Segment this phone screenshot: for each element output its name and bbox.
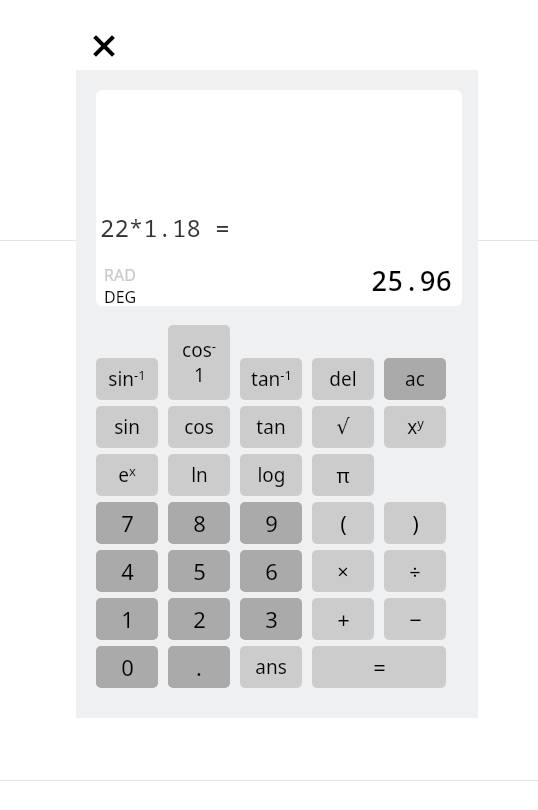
button[interactable]: 3 [240, 598, 302, 640]
button[interactable]: tan-1 [240, 358, 302, 400]
staticText: ( [340, 508, 347, 538]
button[interactable]: 1 [96, 598, 158, 640]
button[interactable]: sin [96, 406, 158, 448]
button[interactable]: RAD [104, 264, 137, 308]
button[interactable]: ac [384, 358, 446, 400]
button[interactable]: − [384, 598, 446, 640]
button[interactable]: 4 [96, 550, 158, 592]
staticText: 4 [121, 556, 134, 586]
button[interactable]: 2 [168, 598, 230, 640]
button[interactable]: tan [240, 406, 302, 448]
staticText: 6 [265, 556, 278, 586]
staticText: tan-1 [251, 366, 292, 392]
button[interactable]: ln [168, 454, 230, 496]
staticText: sin [114, 414, 140, 440]
button[interactable]: 8 [168, 502, 230, 544]
button[interactable]: cos [168, 406, 230, 448]
staticText: ) [412, 508, 419, 538]
button[interactable]: ex [96, 454, 158, 496]
button[interactable]: = [312, 646, 446, 688]
staticText: . [196, 652, 202, 682]
staticText: ans [255, 654, 287, 680]
staticText: × [337, 558, 349, 585]
button[interactable]: × [312, 550, 374, 592]
staticText: = [373, 652, 386, 682]
staticText: DEG [104, 286, 137, 308]
staticText: xy [407, 414, 424, 440]
button[interactable]: del [312, 358, 374, 400]
staticText: + [337, 604, 350, 634]
staticText: tan [256, 414, 286, 440]
button[interactable]: 6 [240, 550, 302, 592]
button[interactable]: ( [312, 502, 374, 544]
button[interactable]: xy [384, 406, 446, 448]
staticText: ac [405, 366, 425, 392]
button[interactable]: sin-1 [96, 358, 158, 400]
staticText: cos- [182, 337, 216, 363]
staticText: del [329, 366, 357, 392]
button[interactable]: 0 [96, 646, 158, 688]
staticText: 22*1.18 = [100, 211, 230, 244]
staticText: 5 [193, 556, 206, 586]
staticText: sin-1 [108, 366, 146, 392]
staticText: 3 [265, 604, 278, 634]
staticText: 2 [193, 604, 206, 634]
staticText: 25.96 [371, 262, 452, 296]
button[interactable]: Close [86, 28, 122, 64]
button[interactable]: ÷ [384, 550, 446, 592]
staticText: 1 [121, 604, 134, 634]
staticText: ln [191, 462, 208, 488]
button[interactable]: ans [240, 646, 302, 688]
staticText: 0 [121, 652, 134, 682]
staticText: √ [336, 415, 350, 439]
staticText: 1 [194, 362, 205, 388]
staticText: π [336, 462, 350, 489]
button[interactable]: 9 [240, 502, 302, 544]
staticText: ÷ [409, 558, 421, 585]
button[interactable]: log [240, 454, 302, 496]
staticText: − [409, 604, 422, 634]
staticText: 7 [121, 508, 134, 538]
button[interactable]: √ [312, 406, 374, 448]
staticText: RAD [104, 264, 136, 286]
staticText: cos [184, 414, 214, 440]
button[interactable]: π [312, 454, 374, 496]
button[interactable]: + [312, 598, 374, 640]
staticText: 9 [265, 508, 278, 538]
staticText: 8 [193, 508, 206, 538]
button[interactable]: 5 [168, 550, 230, 592]
button[interactable]: 7 [96, 502, 158, 544]
button[interactable]: cos- [168, 325, 230, 400]
staticText: log [257, 462, 286, 488]
button[interactable]: ) [384, 502, 446, 544]
staticText: ex [118, 462, 136, 488]
button[interactable]: . [168, 646, 230, 688]
